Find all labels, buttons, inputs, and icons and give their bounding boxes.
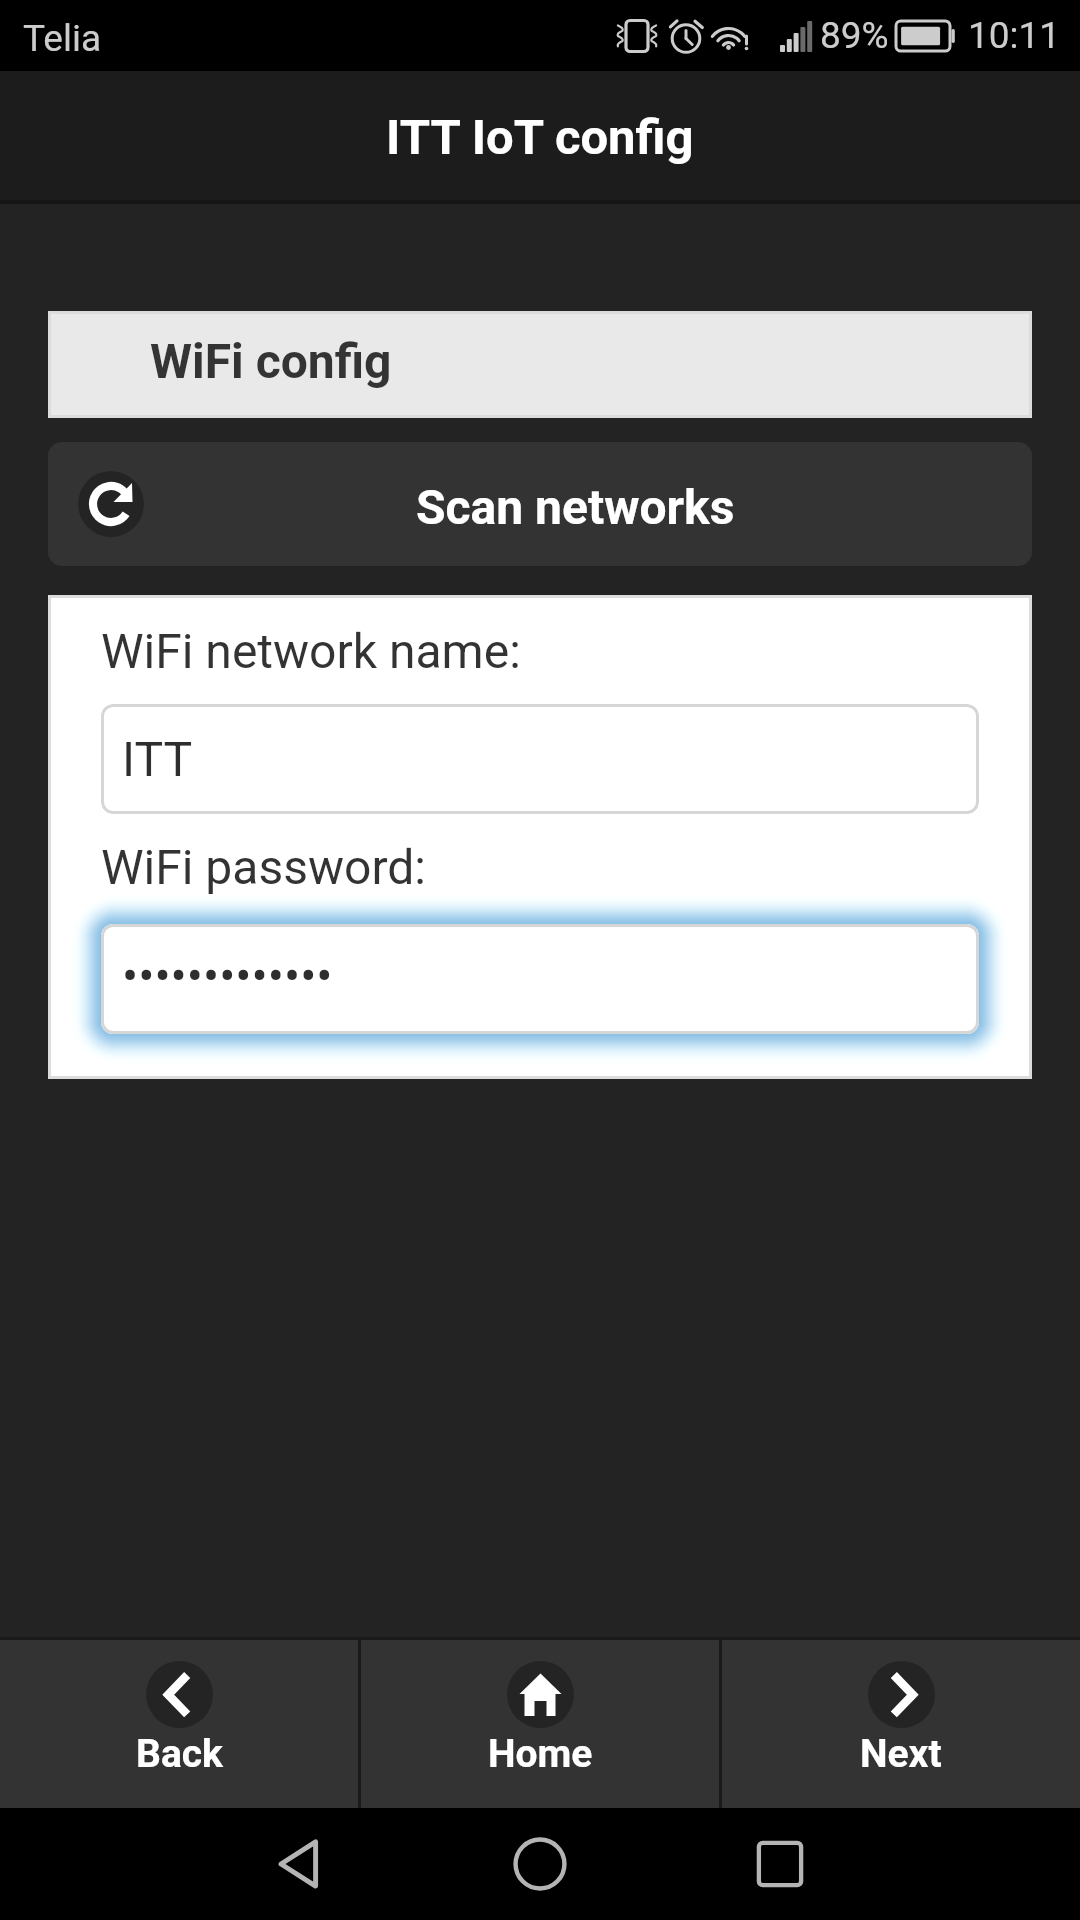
staticText: 10:11 [968, 14, 1061, 57]
button[interactable]: Home [498, 1822, 582, 1906]
staticText: Home [488, 1731, 593, 1777]
staticText: ITT [122, 731, 193, 787]
button[interactable]: Next [722, 1640, 1080, 1808]
button[interactable]: ITT [101, 704, 979, 814]
button[interactable]: Home [361, 1640, 719, 1808]
button[interactable]: WiFi config [48, 311, 1032, 418]
staticText: ••••••••••••• [122, 948, 333, 1004]
staticText: 89% [820, 14, 889, 57]
staticText: Next [860, 1731, 942, 1777]
button[interactable]: Back [258, 1822, 342, 1906]
staticText: WiFi config [150, 333, 392, 389]
button[interactable]: Recent apps [738, 1822, 822, 1906]
staticText: Telia [23, 17, 102, 60]
staticText: WiFi password: [101, 839, 426, 895]
staticText: ITT IoT config [386, 109, 694, 166]
staticText: Scan networks [416, 479, 735, 535]
staticText: WiFi network name: [101, 623, 521, 679]
button[interactable]: ••••••••••••• [101, 924, 979, 1034]
button[interactable]: Back [0, 1640, 358, 1808]
button[interactable]: Scan networks [48, 442, 1032, 566]
staticText: Back [136, 1731, 223, 1777]
